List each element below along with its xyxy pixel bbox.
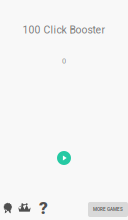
button[interactable]: Achievements <box>0 198 16 220</box>
button[interactable]: Tap to boost <box>49 143 79 173</box>
staticText: MORE GAMES <box>93 207 123 212</box>
staticText: 100 Click Booster <box>22 24 105 36</box>
staticText: ? <box>39 198 48 218</box>
button[interactable]: Help <box>35 197 52 219</box>
button[interactable]: MORE GAMES <box>88 202 128 217</box>
button[interactable]: Leaderboard <box>16 196 33 218</box>
staticText: 0 <box>62 57 66 65</box>
